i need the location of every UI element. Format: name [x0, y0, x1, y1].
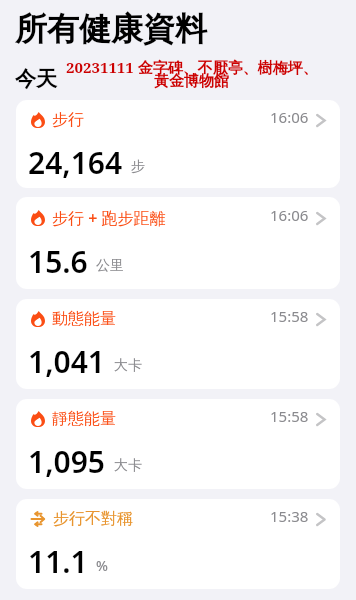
- staticText: 今天: [15, 66, 57, 92]
- staticText: 16:06: [270, 205, 309, 225]
- staticText: 步行: [52, 110, 84, 130]
- staticText: 步: [131, 158, 145, 176]
- staticText: 20231111 金字碑、不厭亭、樹梅坪、: [66, 57, 318, 77]
- staticText: 大卡: [114, 457, 142, 475]
- staticText: 大卡: [114, 357, 142, 375]
- staticText: 15:58: [270, 306, 309, 326]
- staticText: 11.1: [28, 541, 88, 582]
- staticText: 15:58: [270, 406, 309, 426]
- staticText: 16:06: [270, 107, 309, 127]
- staticText: 黃金博物館: [154, 72, 229, 91]
- button[interactable]: 動態能量: [16, 299, 340, 389]
- staticText: 步行不對稱: [53, 509, 133, 529]
- staticText: 動態能量: [52, 309, 116, 329]
- button[interactable]: 步行: [16, 100, 340, 188]
- staticText: 公里: [96, 257, 124, 275]
- staticText: 15:38: [270, 506, 309, 526]
- staticText: 1,095: [28, 441, 106, 482]
- staticText: 1,041: [28, 341, 106, 382]
- staticText: %: [96, 556, 108, 575]
- staticText: 步行 + 跑步距離: [52, 207, 166, 229]
- staticText: 所有健康資料: [15, 9, 207, 49]
- button[interactable]: 靜態能量: [16, 399, 340, 489]
- staticText: 靜態能量: [52, 409, 116, 429]
- button[interactable]: 步行不對稱: [16, 499, 340, 589]
- staticText: 15.6: [28, 241, 88, 282]
- staticText: 24,164: [28, 142, 123, 183]
- button[interactable]: 步行 + 跑步距離: [16, 197, 340, 289]
